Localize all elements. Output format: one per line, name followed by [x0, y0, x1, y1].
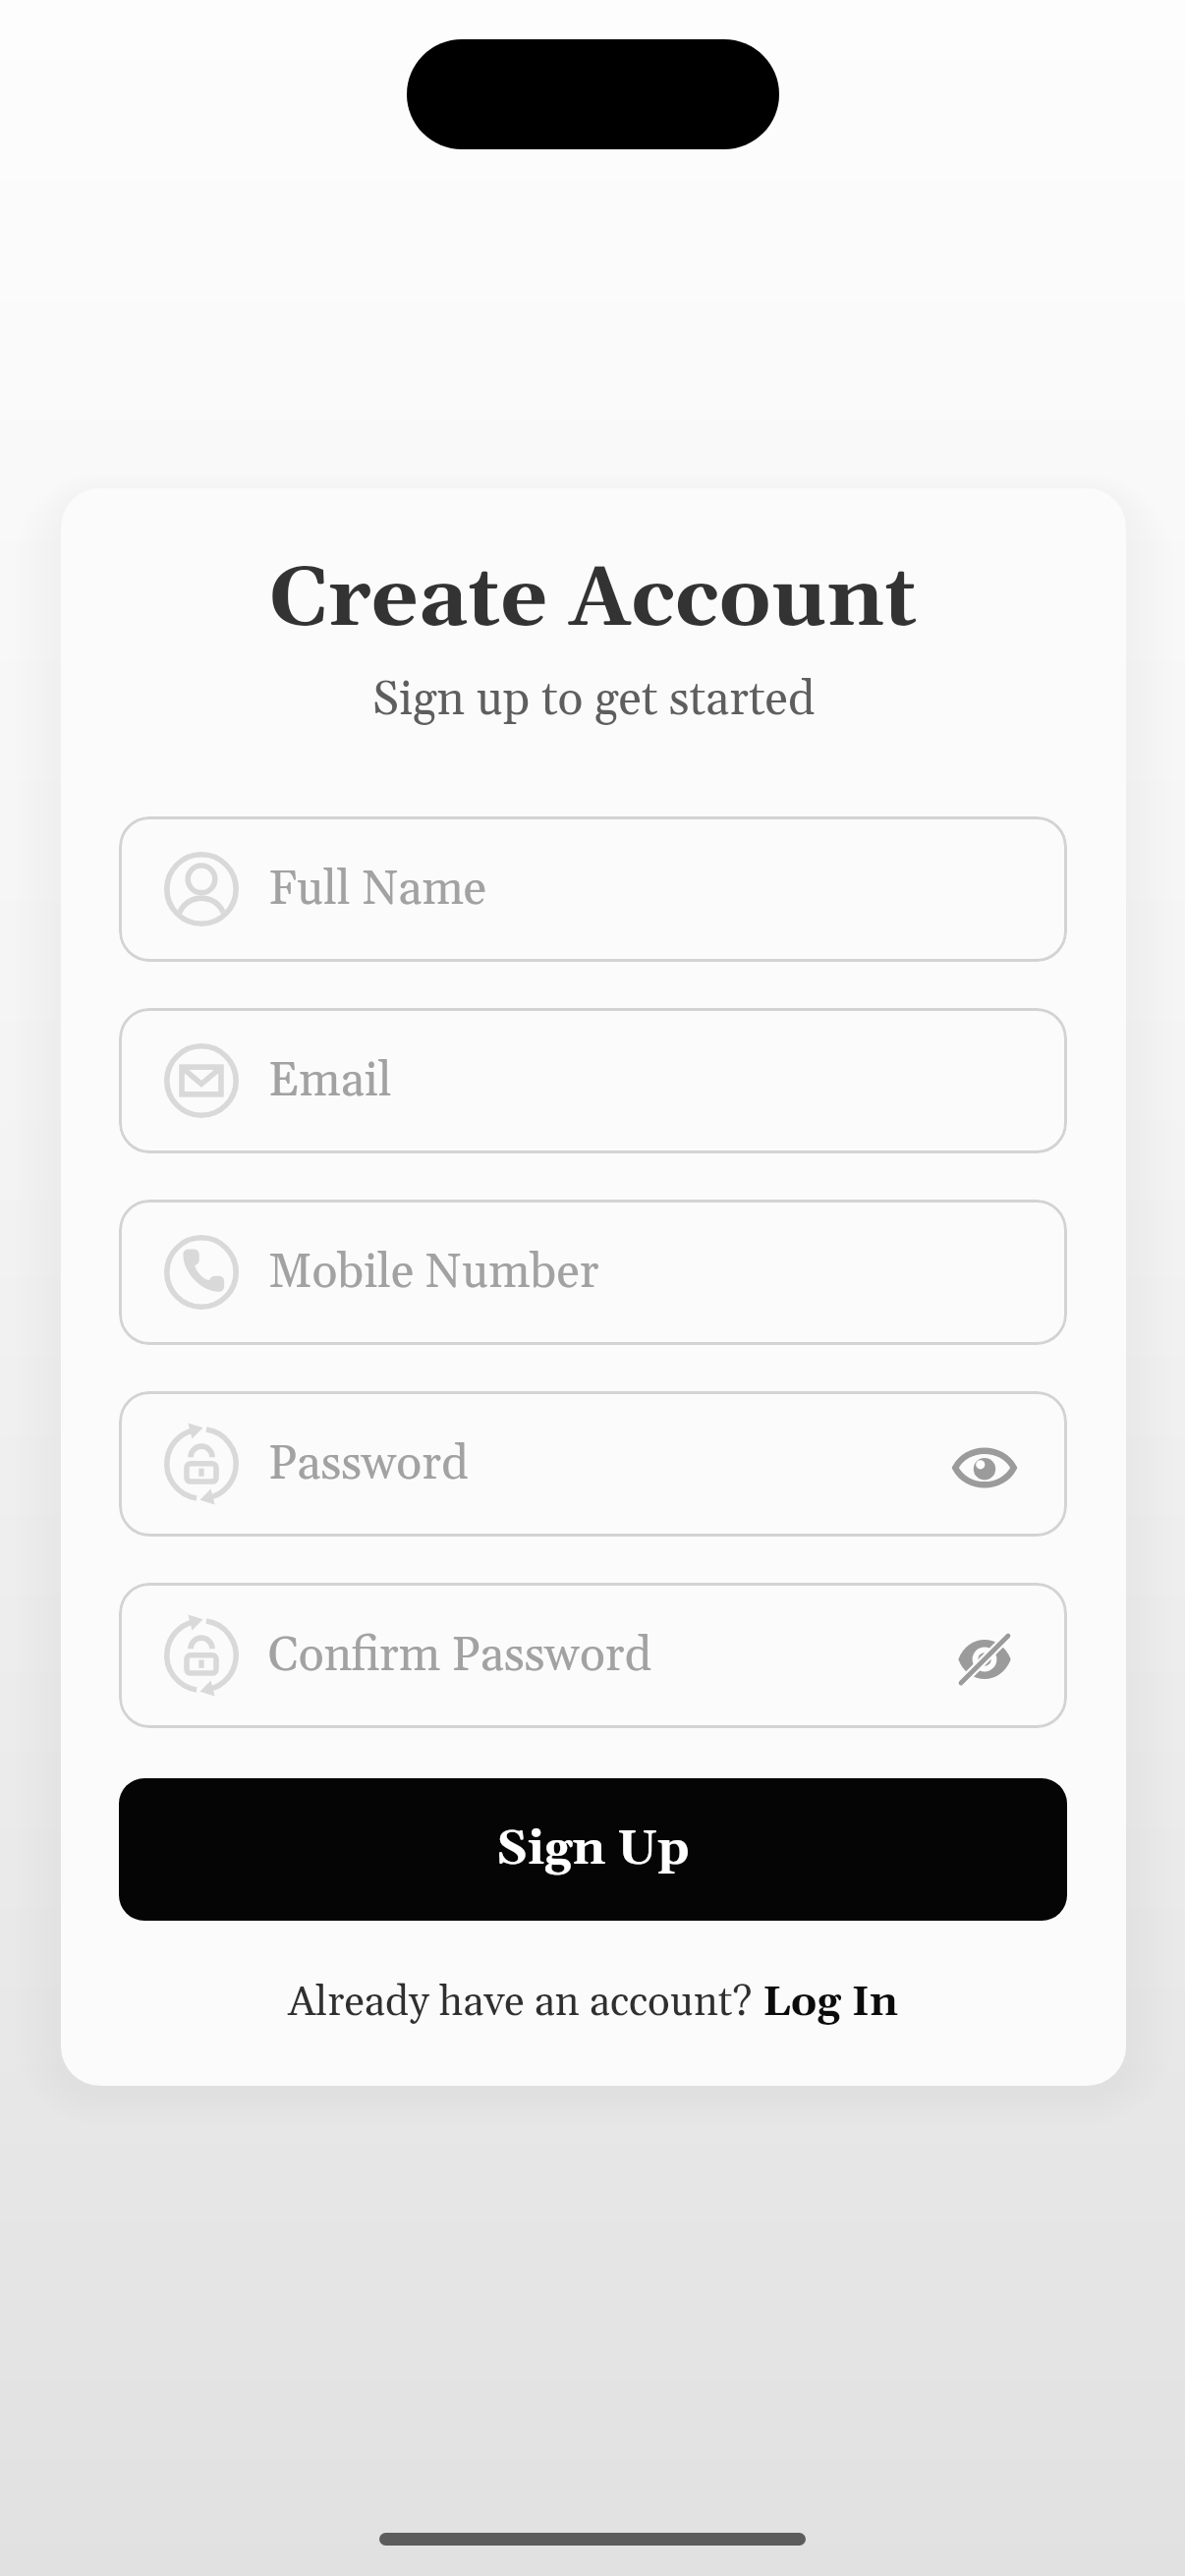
staticText: Mobile Number — [268, 1243, 599, 1303]
staticText: Already have an account? — [288, 1977, 762, 2029]
button[interactable]: Hide password — [947, 1622, 1022, 1697]
button[interactable]: Sign Up — [119, 1778, 1067, 1921]
other: Password — [164, 1618, 239, 1693]
staticText: Email — [268, 1051, 392, 1111]
button[interactable]: Full name — [119, 816, 1067, 962]
button[interactable]: Mobile number — [119, 1200, 1067, 1345]
button[interactable]: Show password — [947, 1430, 1022, 1505]
other: Mobile number — [164, 1235, 239, 1310]
staticText: Sign up to get started — [372, 670, 816, 730]
staticText: Full Name — [268, 860, 486, 920]
button[interactable]: Password — [119, 1583, 1067, 1728]
staticText: Log In — [762, 1977, 899, 2029]
staticText: Sign Up — [496, 1820, 690, 1880]
button[interactable]: Log In — [762, 1977, 899, 2029]
staticText: Create Account — [269, 548, 918, 653]
button[interactable]: Email — [119, 1008, 1067, 1153]
other: Full name — [164, 852, 239, 926]
button[interactable]: Password — [119, 1391, 1067, 1537]
other: Email — [164, 1043, 239, 1118]
staticText: Password — [268, 1434, 469, 1494]
staticText: Confirm Password — [268, 1626, 651, 1686]
other: Password — [164, 1427, 239, 1501]
